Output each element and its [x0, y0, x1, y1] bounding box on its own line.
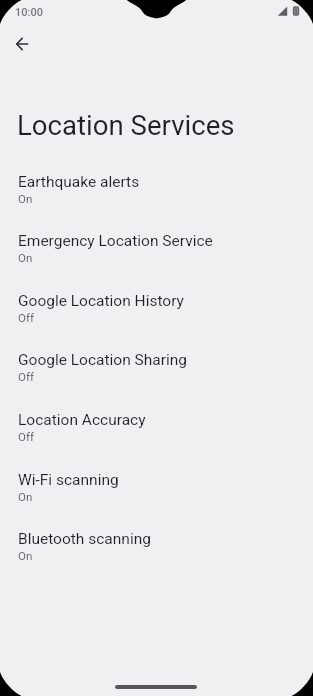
staticText: Off	[18, 430, 34, 443]
staticText: Location Accuracy	[18, 411, 146, 429]
button[interactable]: Wi-Fi scanning	[0, 467, 313, 527]
staticText: Location Services	[17, 109, 235, 141]
button[interactable]: Emergency Location Service	[0, 228, 313, 288]
staticText: 10:00	[15, 6, 43, 19]
staticText: On	[18, 251, 33, 264]
button[interactable]: Navigate up	[6, 28, 38, 60]
staticText: Off	[18, 311, 34, 324]
button[interactable]: Google Location History	[0, 288, 313, 348]
staticText: On	[18, 192, 33, 205]
button[interactable]: Bluetooth scanning	[0, 526, 313, 586]
staticText: Google Location History	[18, 292, 184, 310]
staticText: Off	[18, 370, 34, 383]
staticText: Wi-Fi scanning	[18, 471, 119, 489]
staticText: On	[18, 490, 33, 503]
staticText: On	[18, 549, 33, 562]
staticText: Google Location Sharing	[18, 351, 188, 369]
button[interactable]: Google Location Sharing	[0, 347, 313, 407]
staticText: Bluetooth scanning	[18, 530, 151, 548]
staticText: Emergency Location Service	[18, 232, 213, 250]
button[interactable]: Location Accuracy	[0, 407, 313, 467]
button[interactable]: Earthquake alerts	[0, 169, 313, 229]
staticText: Earthquake alerts	[18, 173, 140, 191]
